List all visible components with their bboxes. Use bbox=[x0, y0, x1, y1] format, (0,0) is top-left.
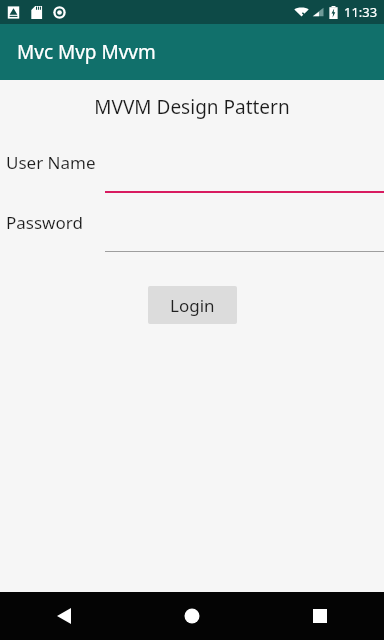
button[interactable] bbox=[105, 212, 384, 252]
staticText: Password bbox=[6, 211, 83, 234]
button[interactable]: Recent apps bbox=[256, 592, 384, 640]
button[interactable]: Home bbox=[128, 592, 256, 640]
staticText: Login bbox=[170, 294, 215, 317]
button[interactable]: Back bbox=[0, 592, 128, 640]
staticText: User Name bbox=[6, 151, 96, 174]
staticText: 11:33 bbox=[344, 3, 378, 21]
button[interactable]: Login bbox=[148, 286, 237, 324]
button[interactable] bbox=[105, 152, 384, 193]
staticText: MVVM Design Pattern bbox=[0, 94, 384, 120]
staticText: Mvc Mvp Mvvm bbox=[17, 39, 156, 65]
